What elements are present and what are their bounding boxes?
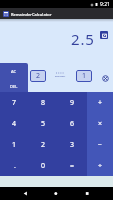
button[interactable]: 2 — [30, 70, 46, 82]
button[interactable]: Clear — [101, 74, 109, 82]
staticText: + — [98, 98, 103, 108]
button[interactable]: 8 — [29, 92, 58, 113]
staticText: Remainder — [55, 75, 66, 78]
staticText: . — [14, 161, 16, 171]
button[interactable]: 9 — [58, 92, 87, 113]
staticText: − — [98, 140, 103, 150]
staticText: 2 — [36, 71, 41, 81]
staticText: 2.5 — [71, 29, 95, 49]
button[interactable]: ÷ — [87, 155, 113, 176]
staticText: × — [98, 119, 103, 129]
button[interactable]: 2 — [29, 134, 58, 155]
staticText: 9 — [70, 98, 75, 108]
button[interactable]: . — [0, 155, 29, 176]
staticText: DEL — [10, 84, 18, 89]
staticText: 6 — [70, 119, 75, 129]
staticText: 5 — [41, 119, 46, 129]
staticText: 3 — [70, 140, 75, 150]
staticText: 7 — [12, 98, 17, 108]
staticText: 8 — [41, 98, 46, 108]
button[interactable]: 5 — [29, 113, 58, 134]
button[interactable]: 6 — [58, 113, 87, 134]
button[interactable]: − — [87, 134, 113, 155]
button[interactable]: 4 — [0, 113, 29, 134]
button[interactable]: + — [87, 92, 113, 113]
button[interactable]: 3 — [58, 134, 87, 155]
button[interactable]: = — [58, 155, 87, 176]
button[interactable]: AC — [0, 63, 28, 78]
button[interactable]: × — [87, 113, 113, 134]
button[interactable]: 1 — [76, 70, 92, 82]
staticText: 9:21 — [100, 1, 110, 8]
staticText: 4 — [12, 119, 17, 129]
staticText: = — [70, 161, 75, 171]
button[interactable]: 1 — [0, 134, 29, 155]
button[interactable]: 7 — [0, 92, 29, 113]
staticText: 0 — [41, 161, 46, 171]
button[interactable]: Copy result — [100, 31, 108, 39]
staticText: 2 — [41, 140, 46, 150]
staticText: 1 — [82, 71, 87, 81]
staticText: ÷ — [98, 161, 103, 171]
staticText: 1 — [12, 140, 17, 150]
staticText: AC — [11, 69, 17, 74]
button[interactable]: DEL — [0, 78, 28, 92]
button[interactable]: 0 — [29, 155, 58, 176]
staticText: RemainderCalculator — [11, 12, 52, 17]
